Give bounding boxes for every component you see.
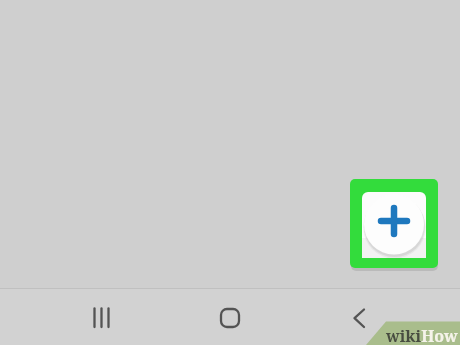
button[interactable] [362,192,426,258]
button[interactable] [87,303,117,333]
button[interactable] [215,303,245,333]
button[interactable] [344,303,374,333]
staticText: wikiHow [386,325,458,345]
